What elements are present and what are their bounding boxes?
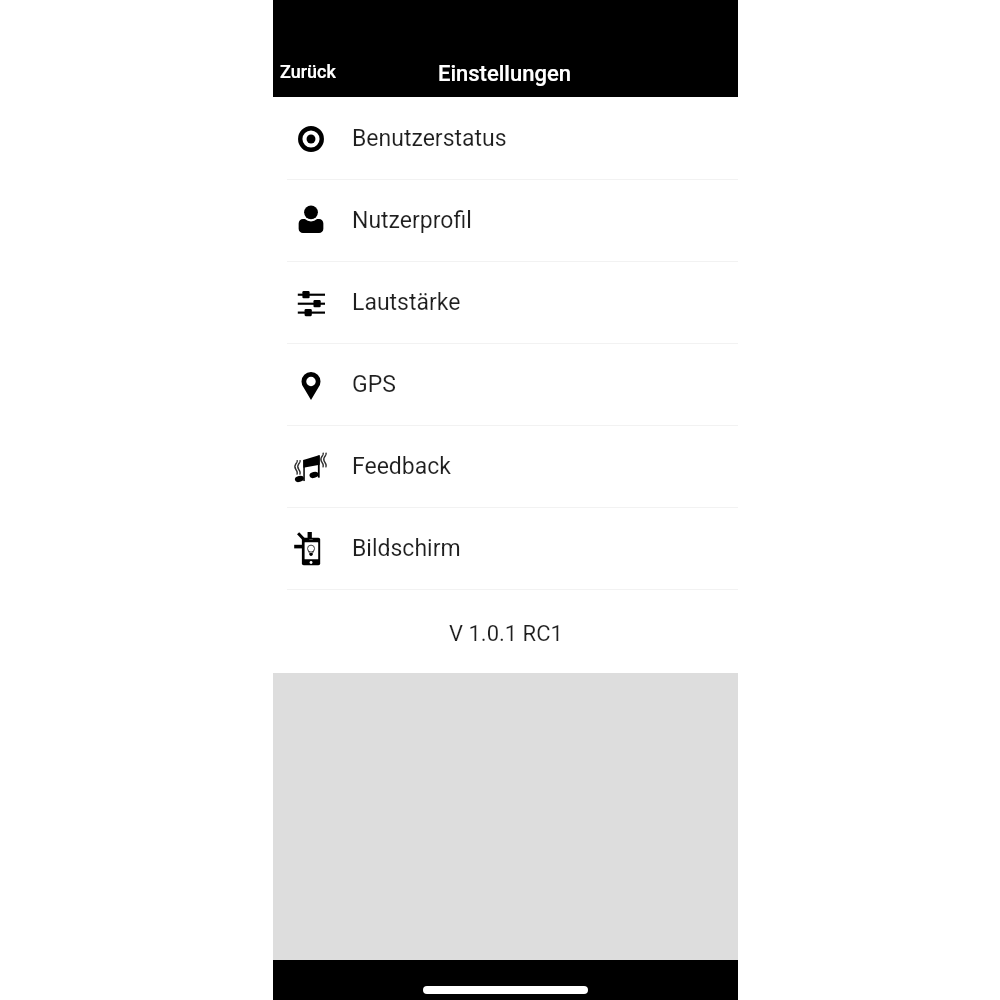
button[interactable]: Bildschirm — [273, 508, 738, 589]
staticText: Einstellungen — [438, 61, 571, 87]
staticText: Benutzerstatus — [352, 125, 507, 152]
button[interactable]: GPS — [273, 344, 738, 425]
staticText: Bildschirm — [352, 535, 461, 562]
button[interactable]: Feedback — [273, 426, 738, 507]
button[interactable]: Lautstärke — [273, 262, 738, 343]
staticText: Feedback — [352, 453, 451, 480]
button[interactable]: Benutzerstatus — [273, 98, 738, 179]
staticText: Lautstärke — [352, 289, 461, 316]
button[interactable]: Nutzerprofil — [273, 180, 738, 261]
staticText: Nutzerprofil — [352, 207, 472, 234]
staticText: GPS — [352, 371, 396, 398]
button[interactable]: Zurück — [273, 46, 348, 84]
staticText: V 1.0.1 RC1 — [449, 621, 563, 647]
staticText: Zurück — [280, 61, 336, 82]
